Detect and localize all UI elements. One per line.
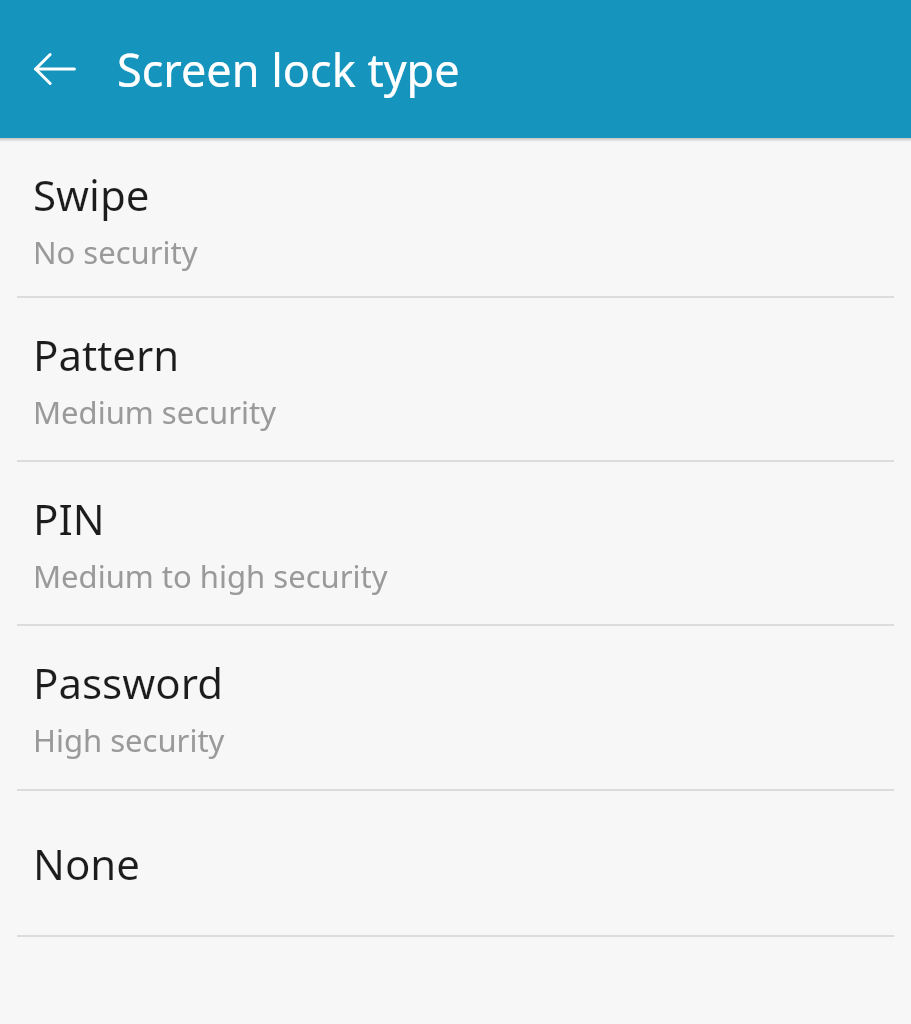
staticText: Medium to high security (33, 555, 388, 597)
button[interactable]: PIN (0, 462, 911, 624)
staticText: Pattern (33, 326, 180, 383)
button[interactable]: None (0, 791, 911, 935)
button[interactable]: Navigate up (18, 32, 92, 106)
staticText: PIN (33, 490, 105, 547)
staticText: Password (33, 654, 223, 711)
staticText: None (33, 835, 140, 892)
staticText: Swipe (33, 166, 150, 223)
staticText: Medium security (33, 391, 277, 433)
button[interactable]: Pattern (0, 298, 911, 460)
staticText: Screen lock type (117, 39, 460, 100)
button[interactable]: Password (0, 626, 911, 789)
button[interactable]: Swipe (0, 142, 911, 296)
staticText: High security (33, 719, 225, 761)
staticText: No security (33, 231, 198, 273)
